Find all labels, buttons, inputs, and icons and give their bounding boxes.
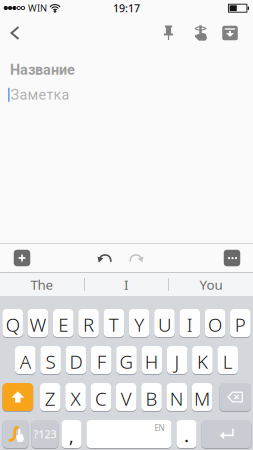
button[interactable]: K — [192, 346, 213, 374]
button[interactable]: S — [40, 346, 61, 374]
staticText: F — [97, 349, 106, 374]
button[interactable]: L — [217, 346, 238, 374]
button[interactable]: C — [91, 383, 111, 411]
button[interactable]: H — [141, 346, 162, 374]
staticText: M — [194, 386, 210, 411]
button[interactable]: I — [179, 309, 200, 337]
staticText: A — [20, 349, 31, 374]
button[interactable]: T — [104, 309, 124, 337]
staticText: W — [29, 312, 46, 337]
staticText: X — [71, 386, 81, 411]
button[interactable]: Q — [2, 309, 23, 337]
staticText: Заметка — [11, 86, 70, 103]
button[interactable]: , — [61, 420, 81, 448]
button[interactable]: Pin — [155, 16, 185, 50]
staticText: E — [58, 312, 68, 337]
staticText: Z — [45, 386, 56, 411]
staticText: V — [121, 386, 132, 411]
button[interactable]: A — [15, 346, 36, 374]
button[interactable]: Reminder — [185, 16, 216, 50]
button[interactable]: Z — [40, 383, 61, 411]
staticText: G — [119, 349, 133, 374]
button[interactable]: D — [66, 346, 86, 374]
staticText: 19:17 — [113, 1, 140, 15]
staticText: EN — [154, 423, 164, 433]
staticText: ?123 — [33, 427, 56, 441]
staticText: J — [175, 349, 180, 374]
button[interactable]: E — [53, 309, 74, 337]
button[interactable]: Swype — [2, 420, 28, 448]
staticText: R — [83, 312, 94, 337]
staticText: Название — [10, 61, 75, 78]
button[interactable]: Delete — [219, 383, 251, 411]
staticText: B — [145, 386, 157, 411]
button[interactable]: P — [230, 309, 251, 337]
button[interactable]: R — [78, 309, 99, 337]
button[interactable]: W — [28, 309, 48, 337]
button[interactable]: Undo — [93, 244, 115, 272]
staticText: K — [197, 349, 208, 374]
staticText: Y — [134, 312, 144, 337]
staticText: You — [199, 276, 222, 293]
button[interactable]: Y — [129, 309, 149, 337]
staticText: Q — [6, 312, 20, 337]
button[interactable]: O — [205, 309, 225, 337]
button[interactable]: Shift — [2, 383, 33, 411]
button[interactable]: V — [116, 383, 136, 411]
button[interactable]: M — [192, 383, 212, 411]
button[interactable]: Redo — [125, 244, 147, 272]
staticText: N — [170, 386, 184, 411]
button[interactable]: N — [166, 383, 187, 411]
button[interactable]: . — [176, 420, 196, 448]
button[interactable]: Numbers — [31, 420, 58, 448]
button[interactable]: G — [116, 346, 137, 374]
button[interactable]: Archive — [216, 16, 244, 50]
staticText: O — [208, 312, 222, 337]
staticText: , — [69, 425, 74, 448]
staticText: U — [158, 312, 171, 337]
button[interactable]: I — [85, 273, 168, 296]
button[interactable]: Add — [8, 244, 36, 272]
staticText: P — [235, 312, 246, 337]
button[interactable]: B — [141, 383, 162, 411]
staticText: D — [69, 349, 82, 374]
staticText: C — [95, 386, 107, 411]
button[interactable]: U — [154, 309, 175, 337]
staticText: L — [223, 349, 233, 374]
staticText: S — [46, 349, 56, 374]
button[interactable]: The — [0, 273, 84, 296]
staticText: . — [184, 423, 189, 447]
button[interactable]: More — [218, 244, 246, 272]
staticText: The — [30, 276, 53, 293]
button[interactable]: X — [65, 383, 86, 411]
button[interactable]: Space — [86, 420, 171, 448]
staticText: T — [109, 312, 119, 337]
button[interactable]: Return — [201, 420, 251, 448]
staticText: I — [124, 276, 129, 293]
staticText: WIN — [28, 2, 47, 14]
staticText: H — [145, 349, 159, 374]
staticText: I — [187, 312, 193, 337]
button[interactable]: Back — [0, 16, 30, 50]
button[interactable]: F — [91, 346, 111, 374]
button[interactable]: J — [167, 346, 187, 374]
button[interactable]: You — [169, 273, 253, 296]
